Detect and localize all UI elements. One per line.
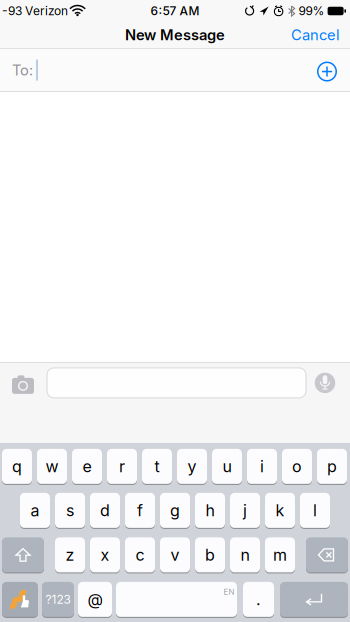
- staticText: -93 Verizon: [2, 4, 68, 18]
- staticText: b: [205, 545, 215, 564]
- button[interactable]: n: [230, 537, 260, 572]
- button[interactable]: Cancel: [291, 26, 340, 44]
- staticText: w: [45, 457, 58, 476]
- staticText: .: [256, 590, 261, 609]
- staticText: ?123: [45, 592, 70, 606]
- button[interactable]: c: [125, 537, 155, 572]
- button[interactable]: g: [160, 493, 190, 528]
- staticText: h: [205, 501, 214, 520]
- button[interactable]: v: [160, 537, 190, 572]
- staticText: p: [327, 457, 337, 476]
- staticText: EN: [223, 587, 234, 597]
- staticText: o: [292, 457, 302, 476]
- button[interactable]: Message field: [47, 368, 306, 398]
- staticText: g: [170, 501, 180, 520]
- staticText: 99%: [299, 4, 325, 18]
- staticText: q: [12, 457, 22, 476]
- button[interactable]: Dictation: [315, 373, 335, 393]
- staticText: z: [65, 545, 74, 564]
- staticText: l: [313, 501, 317, 520]
- button[interactable]: j: [230, 493, 260, 528]
- button[interactable]: b: [195, 537, 225, 572]
- button[interactable]: Return: [280, 582, 348, 617]
- button[interactable]: h: [195, 493, 225, 528]
- button[interactable]: i: [247, 449, 277, 484]
- button[interactable]: r: [107, 449, 137, 484]
- button[interactable]: x: [90, 537, 120, 572]
- staticText: v: [170, 545, 179, 564]
- staticText: m: [273, 545, 287, 564]
- staticText: j: [243, 501, 247, 520]
- button[interactable]: @: [78, 582, 112, 617]
- button[interactable]: Swype: [2, 582, 38, 617]
- button[interactable]: m: [265, 537, 295, 572]
- button[interactable]: p: [317, 449, 347, 484]
- staticText: n: [240, 545, 249, 564]
- staticText: i: [260, 457, 264, 476]
- staticText: Cancel: [291, 26, 340, 44]
- staticText: e: [82, 457, 91, 476]
- staticText: k: [275, 501, 284, 520]
- button[interactable]: Space: [116, 582, 237, 617]
- staticText: s: [66, 501, 74, 520]
- button[interactable]: Camera: [12, 378, 34, 394]
- button[interactable]: e: [72, 449, 102, 484]
- button[interactable]: o: [282, 449, 312, 484]
- button[interactable]: u: [212, 449, 242, 484]
- staticText: c: [135, 545, 144, 564]
- button[interactable]: Add Contact: [312, 56, 342, 86]
- button[interactable]: a: [20, 493, 50, 528]
- button[interactable]: q: [2, 449, 32, 484]
- staticText: New Message: [125, 26, 225, 44]
- staticText: To:: [12, 61, 33, 79]
- staticText: x: [100, 545, 109, 564]
- staticText: f: [137, 501, 143, 520]
- staticText: y: [187, 457, 196, 476]
- button[interactable]: t: [142, 449, 172, 484]
- staticText: r: [119, 457, 125, 476]
- staticText: d: [100, 501, 110, 520]
- staticText: t: [154, 457, 159, 476]
- button[interactable]: .: [243, 582, 274, 617]
- staticText: u: [222, 457, 231, 476]
- button[interactable]: l: [300, 493, 330, 528]
- button[interactable]: z: [55, 537, 85, 572]
- button[interactable]: Delete: [306, 537, 348, 572]
- button[interactable]: y: [177, 449, 207, 484]
- button[interactable]: d: [90, 493, 120, 528]
- button[interactable]: s: [55, 493, 85, 528]
- button[interactable]: ?123: [42, 582, 74, 617]
- staticText: 6:57 AM: [150, 4, 199, 18]
- button[interactable]: w: [37, 449, 67, 484]
- button[interactable]: k: [265, 493, 295, 528]
- button[interactable]: Shift: [2, 537, 44, 572]
- button[interactable]: f: [125, 493, 155, 528]
- staticText: a: [30, 501, 39, 520]
- staticText: @: [87, 590, 102, 609]
